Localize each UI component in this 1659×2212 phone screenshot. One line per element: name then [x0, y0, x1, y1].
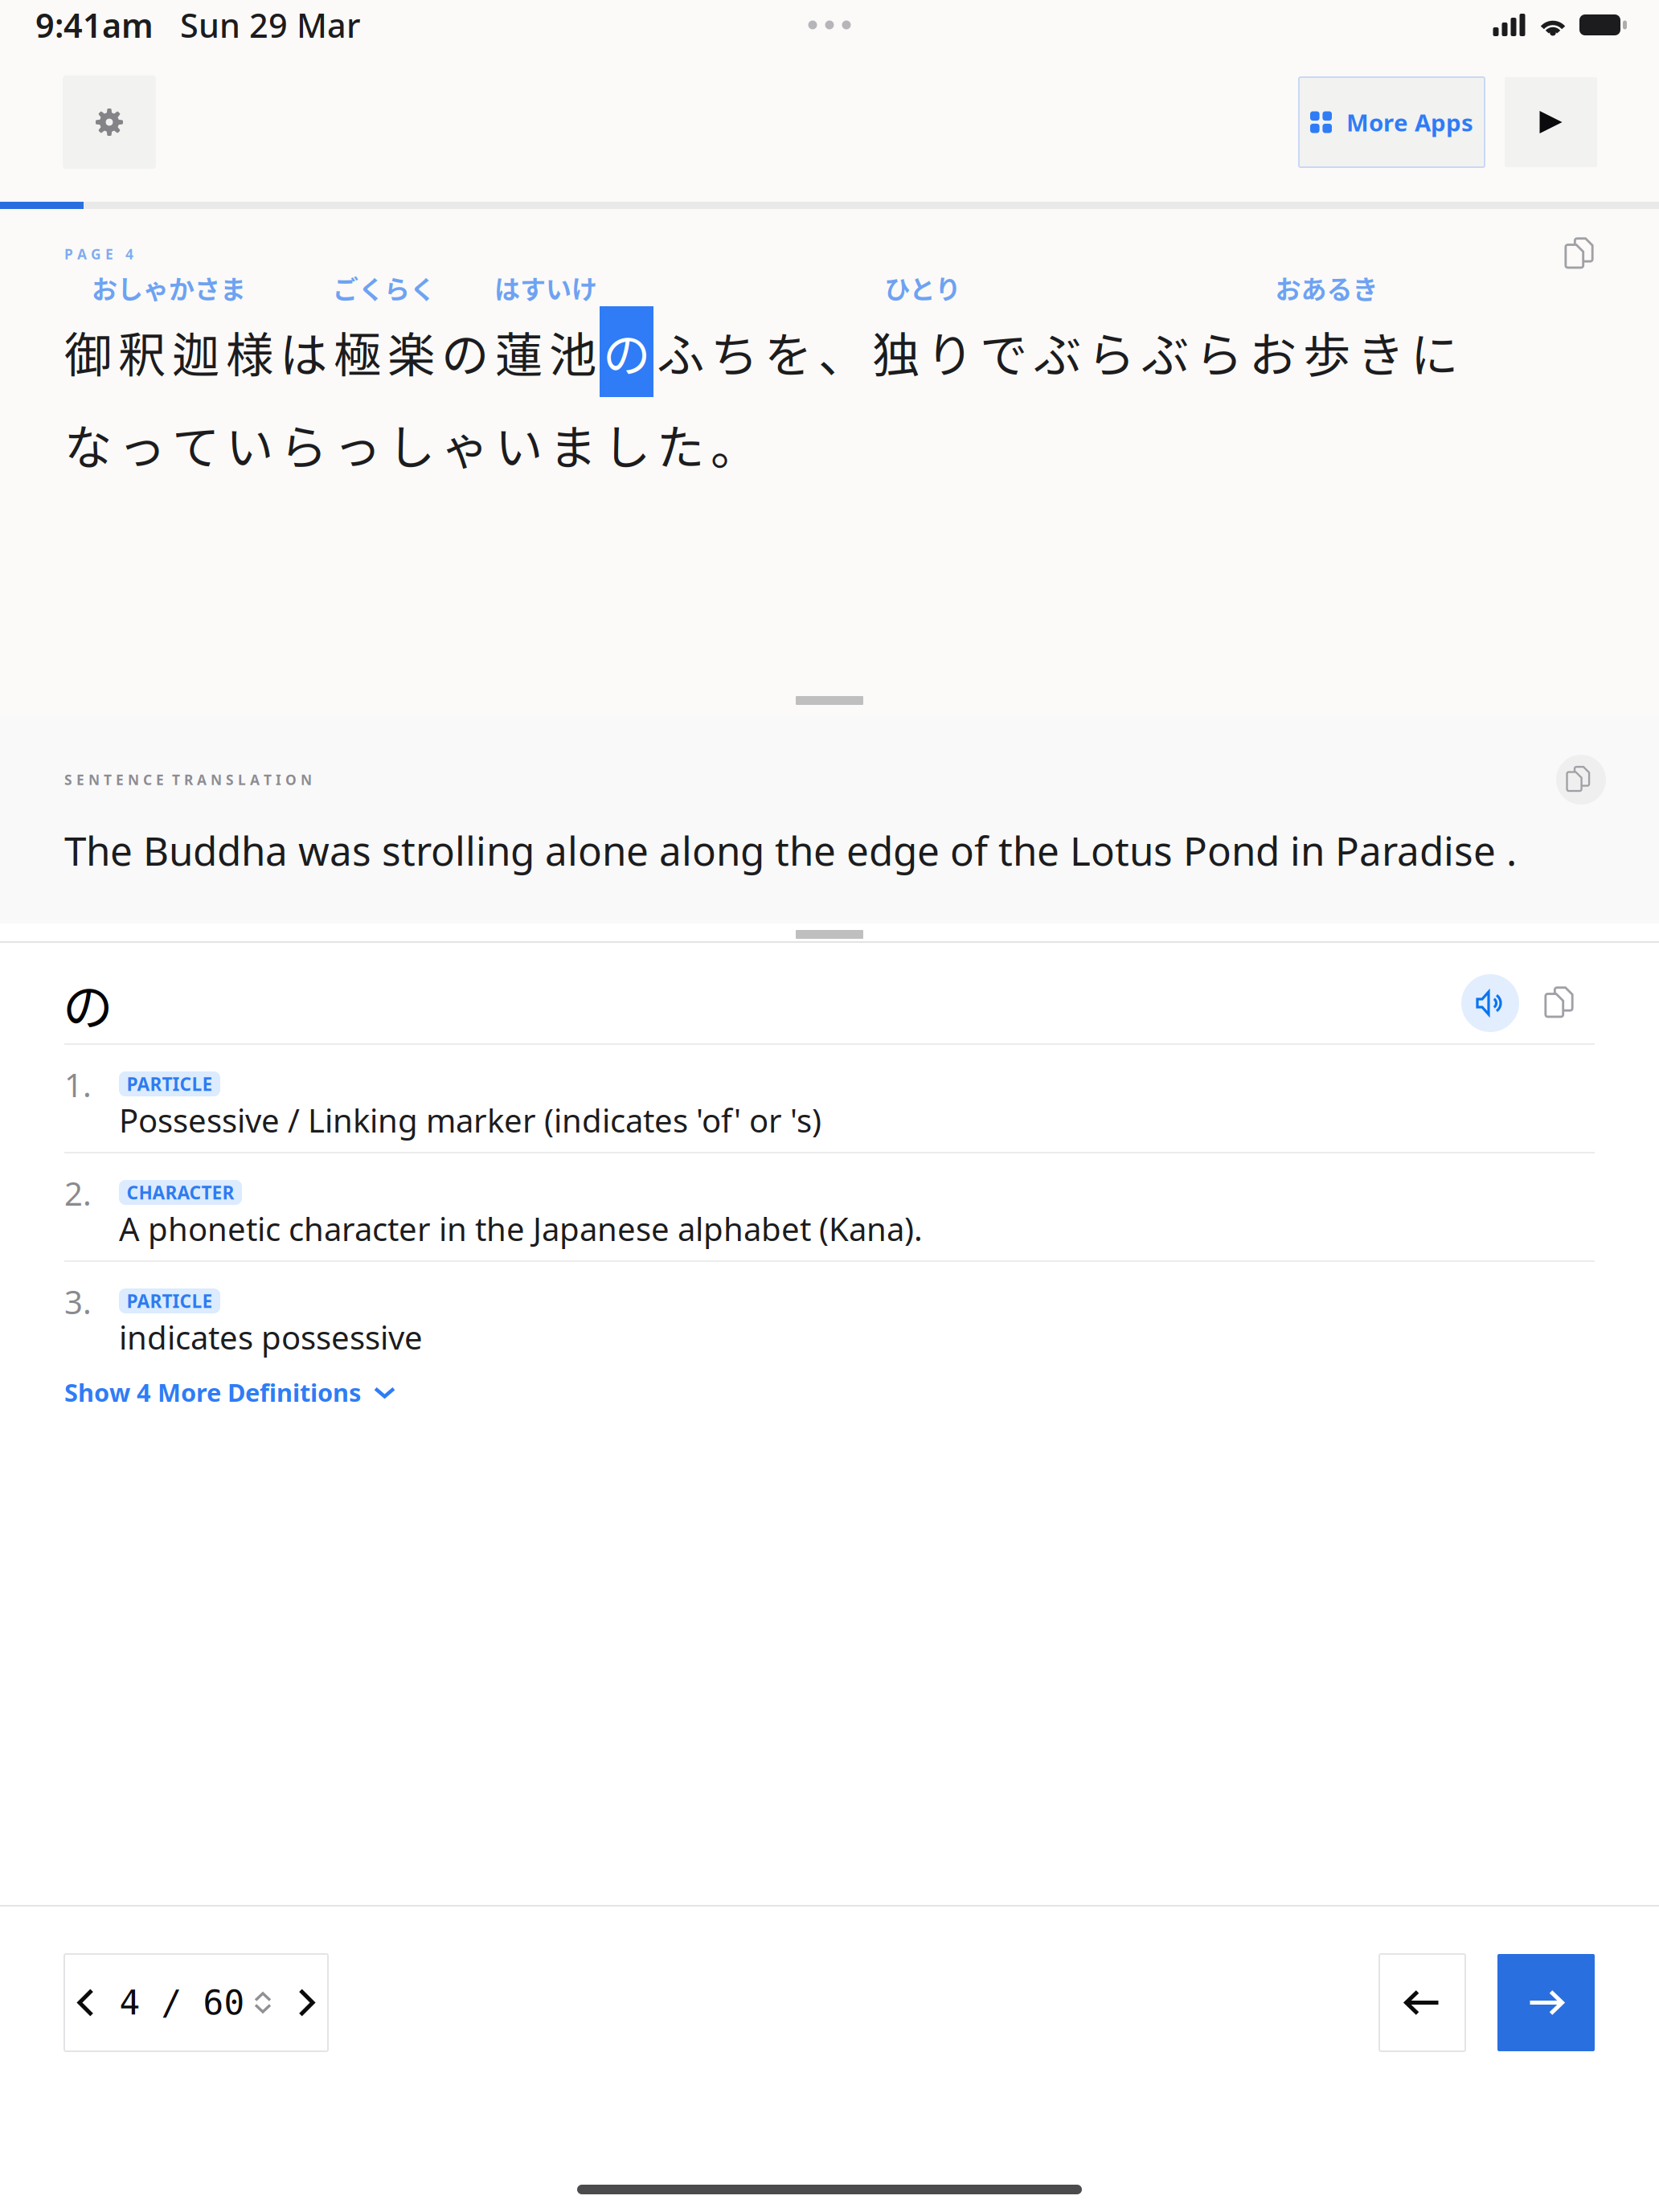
staticText: 。	[711, 410, 758, 479]
staticText: ごくらく	[333, 269, 436, 306]
staticText: 極	[334, 317, 381, 386]
staticText: し	[603, 410, 650, 479]
staticText: 、	[818, 317, 866, 386]
staticText: は	[280, 317, 327, 386]
staticText: The Buddha was strolling alone along the…	[64, 824, 1517, 877]
staticText: ぶ	[1034, 317, 1081, 386]
staticText: ら	[1088, 317, 1135, 386]
staticText: はすいけ	[494, 269, 597, 306]
staticText: 蓮	[495, 317, 543, 386]
staticText: し	[387, 410, 435, 479]
staticText: い	[226, 410, 273, 479]
staticText: ゃ	[441, 410, 489, 479]
staticText: ち	[711, 317, 758, 386]
staticText: な	[64, 410, 112, 479]
staticText: っ	[334, 410, 381, 479]
staticText: に	[1411, 317, 1458, 386]
staticText: の	[603, 317, 650, 386]
staticText: 御	[64, 317, 112, 386]
staticText: 2.	[64, 1172, 92, 1215]
staticText: き	[1357, 317, 1404, 386]
staticText: ら	[1195, 317, 1243, 386]
staticText: ふ	[657, 317, 704, 386]
button[interactable]: Copy translation	[1556, 755, 1606, 805]
staticText: 池	[549, 317, 596, 386]
staticText: Sun 29 Mar	[154, 3, 360, 47]
staticText: おしゃかさま	[92, 269, 246, 306]
button[interactable]: Previous	[1379, 1954, 1465, 2051]
staticText: ぶ	[1141, 317, 1189, 386]
staticText: 迦	[172, 317, 219, 386]
button[interactable]: Next page	[273, 1954, 340, 2051]
staticText: い	[495, 410, 543, 479]
staticText: た	[657, 410, 704, 479]
staticText: て	[172, 410, 219, 479]
staticText: 釈	[118, 317, 166, 386]
button[interactable]: More Apps	[1299, 77, 1485, 167]
staticText: 3.	[64, 1280, 92, 1323]
staticText: ひとり	[885, 269, 961, 306]
button[interactable]: Previous page	[52, 1954, 119, 2051]
staticText: を	[764, 317, 812, 386]
staticText: 様	[226, 317, 273, 386]
staticText: ま	[549, 410, 596, 479]
staticText: ら	[280, 410, 327, 479]
button[interactable]: Play pronunciation	[1461, 974, 1519, 1032]
staticText: 楽	[387, 317, 435, 386]
staticText: PARTICLE	[127, 1289, 213, 1313]
staticText: っ	[118, 410, 166, 479]
staticText: 1.	[64, 1063, 92, 1106]
staticText: More Apps	[1346, 107, 1473, 138]
button[interactable]: Copy word	[1540, 974, 1585, 1032]
button[interactable]: Copy sentence	[1564, 236, 1601, 272]
staticText: り	[926, 317, 973, 386]
staticText: 独	[872, 317, 920, 386]
button[interactable]: Show 4 More Definitions	[0, 1369, 1659, 1415]
staticText: PARTICLE	[127, 1072, 213, 1096]
button[interactable]: Next	[1497, 1954, 1595, 2051]
staticText: お	[1249, 317, 1296, 386]
staticText: おあるき	[1275, 269, 1378, 306]
staticText: indicates possessive	[119, 1316, 423, 1358]
staticText: Possessive / Linking marker (indicates '…	[119, 1099, 821, 1141]
button[interactable]: Play audio	[1505, 77, 1597, 167]
staticText: の	[63, 967, 113, 1040]
staticText: S E N T E N C E T R A N S L A T I O N	[64, 770, 312, 789]
staticText: で	[980, 317, 1027, 386]
staticText: 4 / 60	[119, 1983, 245, 2023]
staticText: A phonetic character in the Japanese alp…	[119, 1207, 923, 1250]
staticText: 9:41am	[35, 3, 154, 47]
staticText: の	[441, 317, 489, 386]
staticText: CHARACTER	[127, 1180, 234, 1204]
button[interactable]: Settings	[63, 76, 156, 169]
staticText: P A G E 4	[64, 245, 133, 263]
staticText: Show 4 More Definitions	[64, 1376, 361, 1408]
staticText: 歩	[1303, 317, 1350, 386]
